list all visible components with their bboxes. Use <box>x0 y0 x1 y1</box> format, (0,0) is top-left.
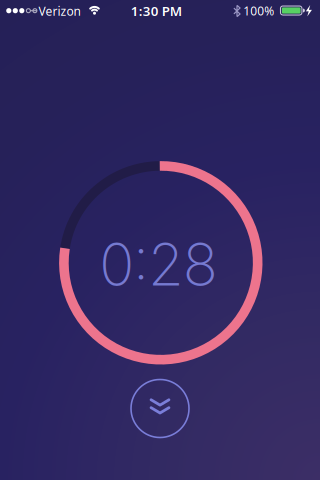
staticText: Verizon <box>38 3 80 19</box>
button[interactable]: Dismiss timer <box>131 379 189 437</box>
staticText: 100% <box>243 3 274 19</box>
staticText: 1:30 PM <box>131 2 182 20</box>
staticText: 0:28 <box>99 229 218 300</box>
